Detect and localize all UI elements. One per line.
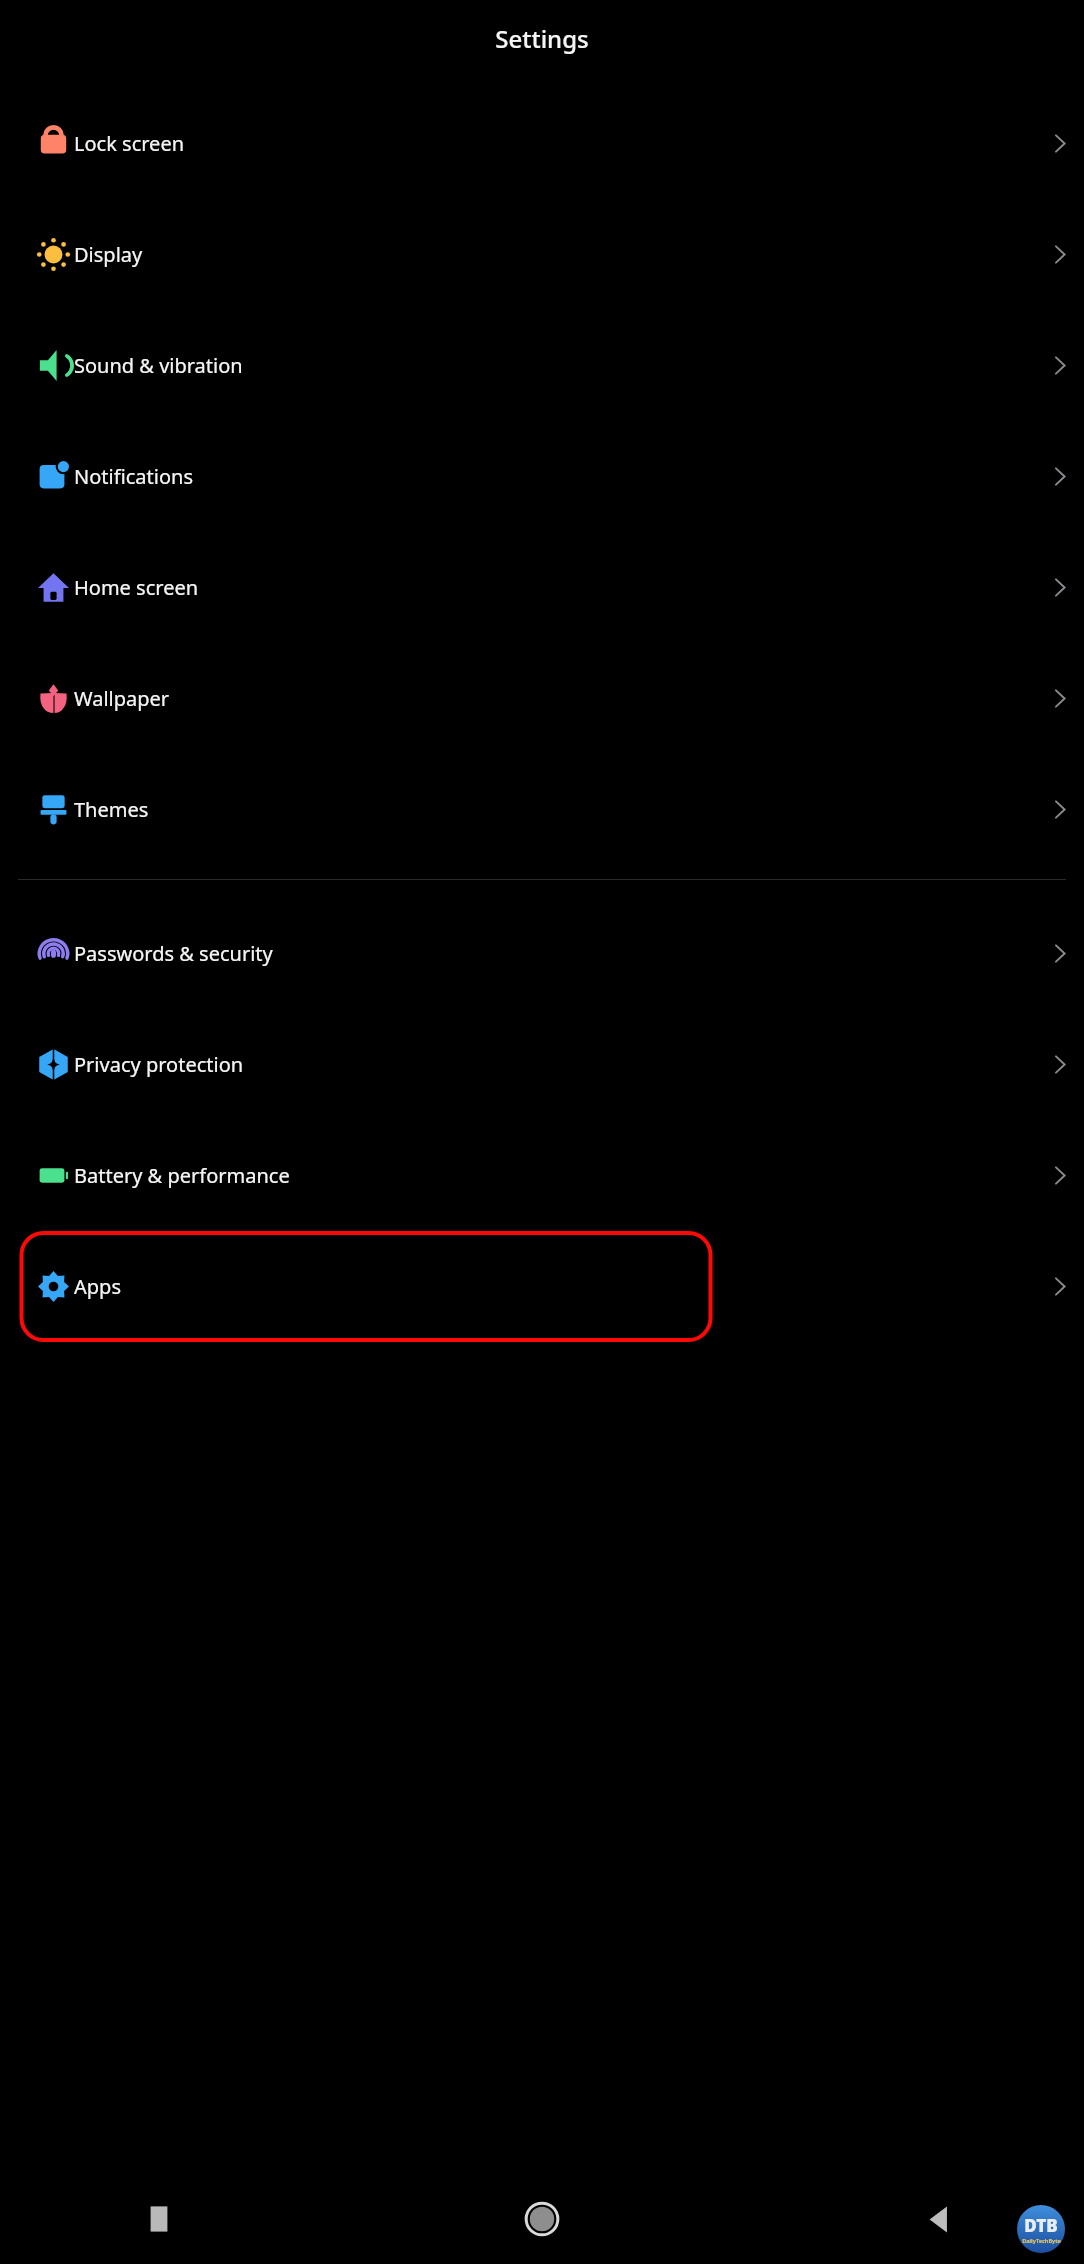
staticText: Apps bbox=[74, 1273, 121, 1300]
button[interactable]: Privacy protection bbox=[0, 1009, 1084, 1120]
button[interactable]: Lock screen bbox=[0, 88, 1084, 199]
staticText: Settings bbox=[0, 22, 1084, 55]
button[interactable]: Notifications bbox=[0, 421, 1084, 532]
button[interactable]: Sound & vibration bbox=[0, 310, 1084, 421]
button[interactable]: Display bbox=[0, 199, 1084, 310]
button[interactable]: Wallpaper bbox=[0, 643, 1084, 754]
staticText: Themes bbox=[74, 796, 149, 823]
staticText: Passwords & security bbox=[74, 940, 273, 967]
staticText: Home screen bbox=[74, 574, 199, 601]
button[interactable]: Passwords & security bbox=[0, 898, 1084, 1009]
button[interactable]: Recents bbox=[144, 2204, 174, 2234]
staticText: DTB bbox=[1024, 2214, 1058, 2237]
button[interactable]: Apps bbox=[0, 1231, 1084, 1342]
staticText: Display bbox=[74, 241, 143, 268]
button[interactable]: Battery & performance bbox=[0, 1120, 1084, 1231]
staticText: Lock screen bbox=[74, 130, 185, 157]
staticText: Battery & performance bbox=[74, 1162, 290, 1189]
button[interactable]: Home bbox=[524, 2201, 560, 2237]
button[interactable]: Themes bbox=[0, 754, 1084, 865]
staticText: Sound & vibration bbox=[74, 352, 243, 379]
staticText: Wallpaper bbox=[74, 685, 170, 712]
button[interactable]: Home screen bbox=[0, 532, 1084, 643]
staticText: Notifications bbox=[74, 463, 193, 490]
button[interactable]: Back bbox=[924, 2204, 955, 2235]
staticText: DailyTechByte bbox=[1022, 2237, 1061, 2244]
staticText: Privacy protection bbox=[74, 1051, 244, 1078]
